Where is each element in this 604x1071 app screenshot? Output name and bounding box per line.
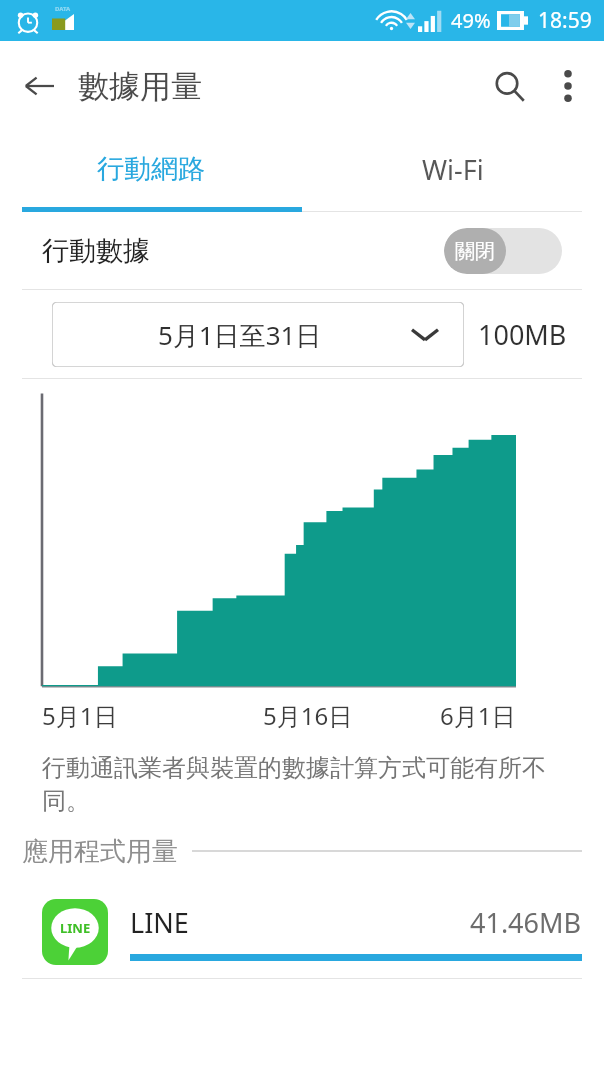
button[interactable]: Search [478,55,540,117]
button[interactable]: LINE [0,886,604,978]
button[interactable]: More options [540,58,596,114]
staticText: 41.46MB [470,904,582,941]
staticText: 18:59 [538,6,592,35]
staticText: 49% [451,7,491,34]
staticText: 行動網路 [97,152,205,186]
staticText: 關閉 [455,239,495,264]
button[interactable]: 5月1日至31日 [52,302,464,367]
staticText: 行動通訊業者與裝置的數據計算方式可能有所不同。 [42,753,564,816]
staticText: 5月16日 [263,699,353,732]
staticText: Wi-Fi [422,151,484,188]
staticText: 應用程式用量 [22,835,178,868]
staticText: 5月1日 [42,699,118,732]
staticText: 數據用量 [78,67,202,106]
button[interactable]: 行動數據 [0,212,604,289]
button[interactable]: Back [14,61,64,111]
staticText: LINE [130,904,189,941]
staticText: LINE [60,919,91,937]
button[interactable]: 行動網路 [0,131,302,207]
staticText: 6月1日 [440,699,516,732]
staticText: 5月1日至31日 [158,317,322,353]
staticText: 行動數據 [42,234,150,268]
staticText: 100MB [478,316,567,353]
staticText: DATA [55,5,71,13]
button[interactable]: Wi-Fi [302,131,604,207]
